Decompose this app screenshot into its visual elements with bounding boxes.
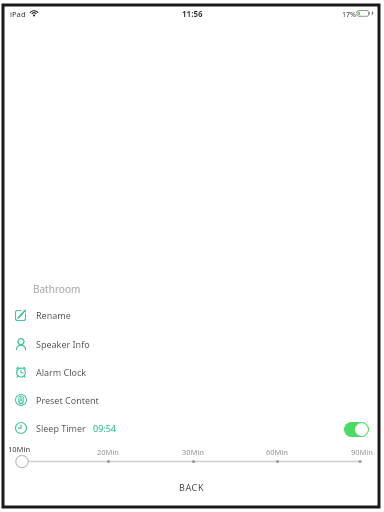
staticText: 30Min: [182, 447, 204, 457]
button[interactable]: [0, 452, 384, 472]
staticText: iPad: [10, 9, 26, 19]
button[interactable]: Alarm Clock: [8, 358, 376, 386]
staticText: BACK: [179, 481, 205, 493]
button[interactable]: BACK: [152, 474, 232, 500]
staticText: 10Min: [8, 444, 31, 454]
button[interactable]: Preset Content: [8, 386, 376, 414]
staticText: Alarm Clock: [36, 366, 87, 378]
staticText: Sleep Timer: [36, 422, 86, 434]
staticText: Rename: [36, 309, 71, 321]
staticText: 11:56: [182, 8, 203, 19]
button[interactable]: Sleep Timer: [8, 414, 376, 442]
button[interactable]: [344, 422, 369, 437]
button[interactable]: Rename: [8, 301, 376, 329]
staticText: Speaker Info: [36, 338, 90, 350]
staticText: 90Min: [351, 447, 373, 457]
button[interactable]: Speaker Info: [8, 330, 376, 358]
staticText: 09:54: [93, 422, 117, 434]
staticText: 60Min: [266, 447, 288, 457]
staticText: 17%: [342, 10, 356, 20]
staticText: 20Min: [97, 447, 119, 457]
staticText: Preset Content: [36, 394, 99, 406]
staticText: Bathroom: [33, 282, 81, 296]
